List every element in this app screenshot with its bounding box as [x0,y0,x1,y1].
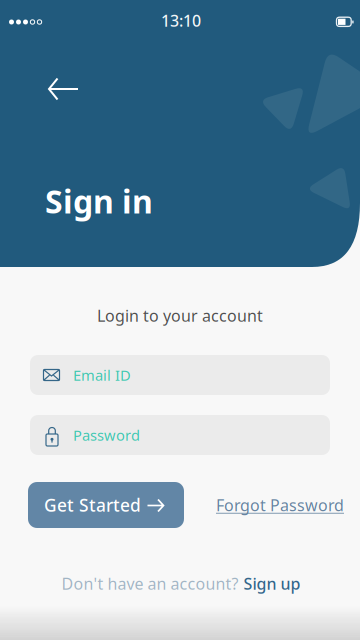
button[interactable]: Get Started [28,482,184,528]
button[interactable]: Password [30,415,330,455]
staticText: Sign up [243,573,300,594]
staticText: Login to your account [97,305,263,326]
button[interactable]: Forgot Password [216,494,344,516]
button[interactable]: Back [41,66,85,110]
staticText: Forgot Password [216,494,344,516]
staticText: Don't have an account? [61,573,238,594]
staticText: Email ID [73,365,131,385]
staticText: Password [73,425,140,445]
staticText: Sign in [45,180,153,222]
staticText: Get Started [44,493,141,516]
button[interactable]: Email ID [30,355,330,395]
staticText: 13:10 [161,10,201,31]
button[interactable]: Sign up [243,573,300,594]
